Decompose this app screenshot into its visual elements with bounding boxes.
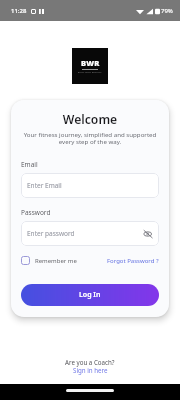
staticText: BWR (81, 58, 100, 68)
staticText: 79% (161, 7, 173, 15)
staticText: Welcome (21, 111, 159, 128)
button[interactable]: Enter Email (21, 173, 159, 198)
button[interactable]: Toggle password visibility (143, 229, 153, 239)
button[interactable]: Log In (21, 284, 159, 306)
staticText: Your fitness journey, simplified and sup… (21, 130, 159, 146)
button[interactable]: Enter password (21, 221, 159, 246)
staticText: Are you a Coach? (65, 358, 115, 366)
staticText: Log In (79, 290, 101, 300)
staticText: Password (21, 208, 51, 217)
button[interactable]: Forgot Password ? (107, 255, 159, 267)
staticText: BUILT WITH RESULTS (78, 71, 102, 74)
staticText: Enter password (27, 229, 75, 238)
button[interactable]: Sign in here (73, 366, 108, 374)
staticText: Remember me (35, 257, 77, 265)
staticText: Email (21, 160, 38, 169)
staticText: Enter Email (27, 181, 62, 190)
staticText: 11:28 (11, 7, 27, 15)
button[interactable]: Remember me (21, 254, 77, 267)
